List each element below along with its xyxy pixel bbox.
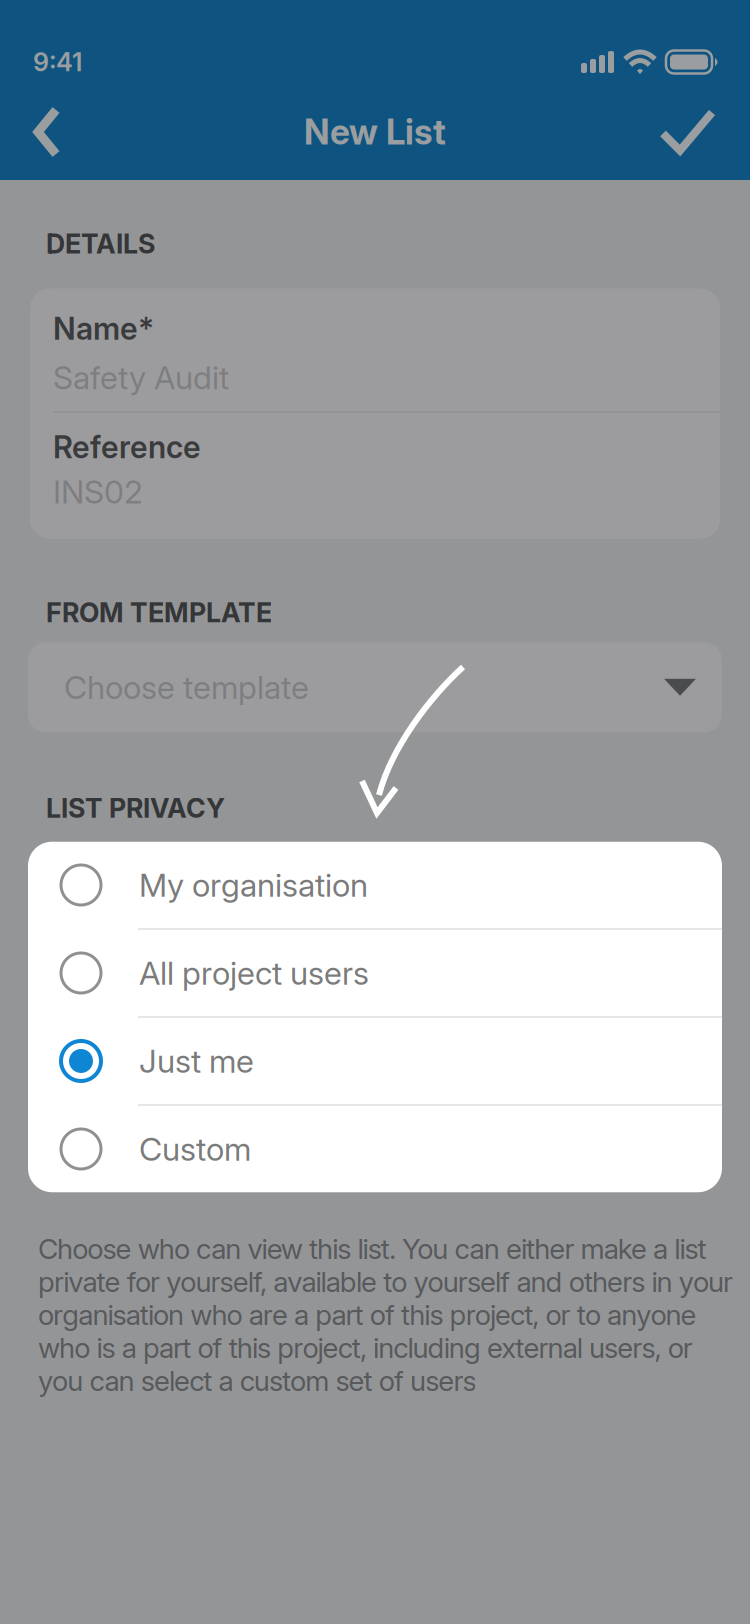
button[interactable]: Just me [28, 1018, 722, 1104]
button[interactable]: Back [0, 88, 60, 176]
staticText: LIST PRIVACY [46, 792, 225, 824]
staticText: Safety Audit [53, 359, 229, 396]
staticText: Choose who can view this list. You can e… [38, 1232, 733, 1397]
button[interactable]: Choose template [28, 642, 722, 732]
staticText: Name* [53, 310, 154, 347]
staticText: Reference [53, 429, 201, 465]
staticText: All project users [139, 954, 369, 992]
staticText: My organisation [139, 866, 368, 904]
staticText: Custom [139, 1130, 251, 1168]
button[interactable]: Save [661, 89, 750, 174]
staticText: Just me [139, 1042, 254, 1080]
staticText: INS02 [53, 473, 143, 511]
staticText: Choose template [64, 668, 309, 706]
button[interactable]: Custom [28, 1106, 722, 1192]
staticText: FROM TEMPLATE [46, 597, 272, 628]
staticText: DETAILS [46, 228, 155, 259]
button[interactable]: My organisation [28, 842, 722, 928]
staticText: 9:41 [33, 47, 82, 77]
button[interactable]: All project users [28, 930, 722, 1016]
staticText: New List [304, 112, 446, 152]
